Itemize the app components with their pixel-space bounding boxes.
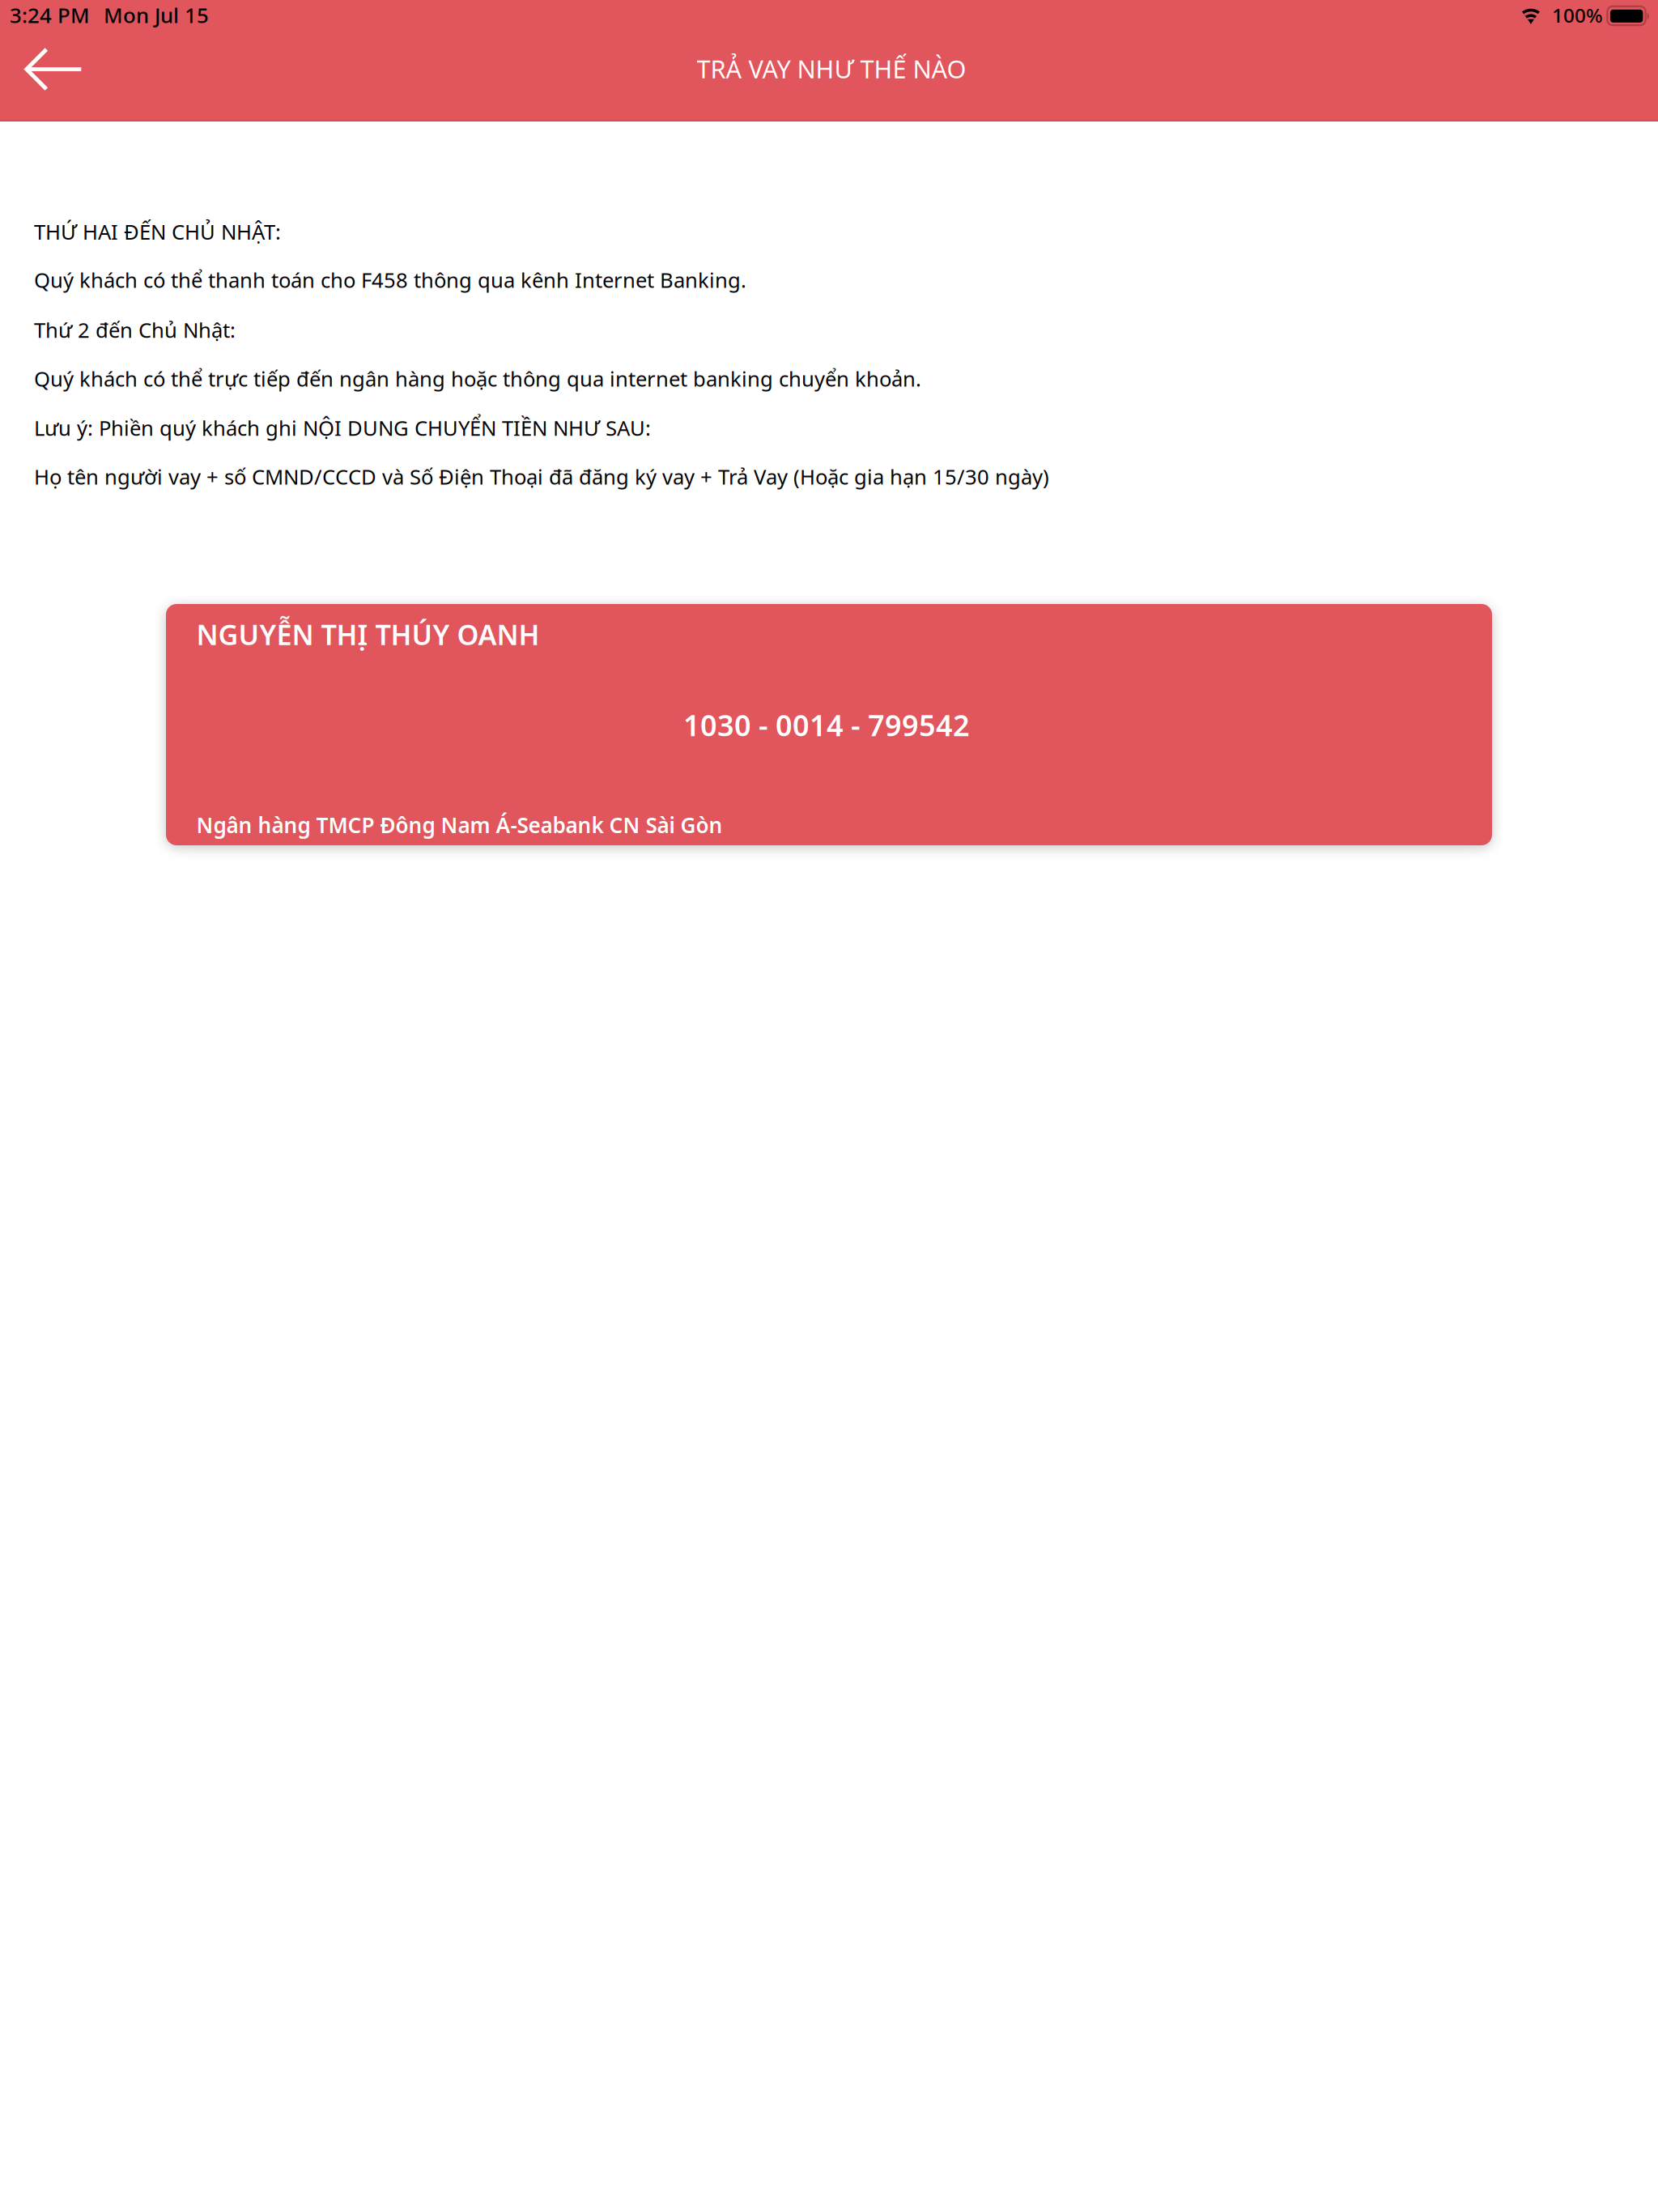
- staticText: Lưu ý: Phiền quý khách ghi NỘI DUNG CHUY…: [34, 414, 651, 442]
- staticText: 100%: [1552, 2, 1603, 28]
- staticText: 3:24 PM: [10, 1, 90, 29]
- staticText: Ngân hàng TMCP Đông Nam Á-Seabank CN Sài…: [196, 810, 723, 839]
- staticText: NGUYỄN THỊ THÚY OANH: [196, 615, 540, 653]
- button[interactable]: Back: [0, 44, 89, 94]
- staticText: Họ tên người vay + số CMND/CCCD và Số Đi…: [34, 462, 1049, 491]
- staticText: THỨ HAI ĐẾN CHỦ NHẬT:: [34, 217, 281, 246]
- staticText: TRẢ VAY NHƯ THẾ NÀO: [697, 52, 966, 85]
- staticText: 1030 - 0014 - 799542: [683, 706, 970, 744]
- staticText: Mon Jul 15: [104, 1, 209, 29]
- staticText: Quý khách có thể thanh toán cho F458 thô…: [34, 266, 746, 294]
- staticText: Quý khách có thể trực tiếp đến ngân hàng…: [34, 364, 921, 393]
- button[interactable]: Bank account NGUYEN THI THUY OANH 1030 0…: [166, 604, 1492, 845]
- staticText: Thứ 2 đến Chủ Nhật:: [34, 316, 236, 344]
